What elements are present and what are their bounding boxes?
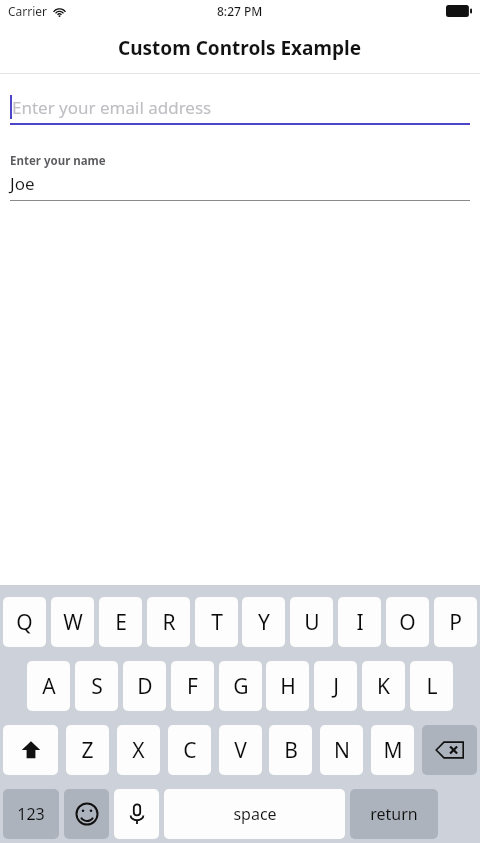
button[interactable]: N: [320, 725, 363, 775]
staticText: Z: [81, 736, 94, 765]
staticText: Y: [258, 608, 270, 637]
staticText: T: [211, 608, 223, 637]
staticText: I: [356, 608, 364, 637]
staticText: J: [333, 672, 339, 701]
button[interactable]: G: [219, 661, 262, 711]
staticText: Carrier: [8, 3, 48, 19]
staticText: C: [183, 736, 197, 765]
button[interactable]: space: [164, 789, 345, 839]
staticText: 8:27 PM: [217, 3, 263, 19]
button[interactable]: Dictate: [114, 789, 159, 839]
button[interactable]: return: [350, 789, 438, 839]
button[interactable]: T: [195, 597, 238, 647]
button[interactable]: Backspace: [422, 725, 477, 775]
staticText: X: [132, 736, 145, 765]
staticText: Enter your name: [10, 153, 106, 169]
button[interactable]: H: [266, 661, 309, 711]
button[interactable]: R: [147, 597, 190, 647]
staticText: E: [115, 608, 127, 637]
staticText: H: [280, 672, 296, 701]
button[interactable]: L: [410, 661, 453, 711]
staticText: M: [383, 736, 403, 765]
button[interactable]: C: [168, 725, 211, 775]
staticText: return: [370, 803, 418, 825]
button[interactable]: E: [99, 597, 142, 647]
button[interactable]: K: [362, 661, 405, 711]
button[interactable]: Shift: [3, 725, 58, 775]
button[interactable]: W: [51, 597, 94, 647]
staticText: L: [426, 672, 438, 701]
button[interactable]: 123: [3, 789, 59, 839]
button[interactable]: A: [27, 661, 70, 711]
button[interactable]: U: [290, 597, 333, 647]
staticText: D: [137, 672, 153, 701]
button[interactable]: Z: [66, 725, 109, 775]
staticText: S: [91, 672, 103, 701]
staticText: P: [449, 608, 462, 637]
button[interactable]: X: [117, 725, 160, 775]
staticText: Q: [16, 608, 33, 637]
button[interactable]: S: [75, 661, 118, 711]
button[interactable]: Emoji: [64, 789, 109, 839]
staticText: B: [284, 736, 298, 765]
button[interactable]: B: [269, 725, 312, 775]
button[interactable]: I: [338, 597, 381, 647]
staticText: O: [399, 608, 416, 637]
button[interactable]: V: [219, 725, 262, 775]
button[interactable]: F: [171, 661, 214, 711]
staticText: Joe: [10, 172, 35, 195]
staticText: G: [233, 672, 249, 701]
button[interactable]: Q: [3, 597, 46, 647]
staticText: V: [234, 736, 247, 765]
staticText: space: [233, 803, 277, 825]
button[interactable]: P: [434, 597, 477, 647]
button[interactable]: O: [386, 597, 429, 647]
button[interactable]: D: [123, 661, 166, 711]
button[interactable]: M: [371, 725, 414, 775]
staticText: K: [377, 672, 390, 701]
staticText: R: [162, 608, 176, 637]
staticText: Enter your email address: [12, 96, 212, 119]
staticText: N: [334, 736, 350, 765]
button[interactable]: J: [314, 661, 357, 711]
staticText: 123: [17, 803, 45, 825]
staticText: F: [187, 672, 198, 701]
staticText: Custom Controls Example: [118, 35, 362, 61]
staticText: U: [304, 608, 320, 637]
staticText: A: [42, 672, 56, 701]
button[interactable]: Y: [242, 597, 285, 647]
staticText: W: [63, 608, 83, 637]
